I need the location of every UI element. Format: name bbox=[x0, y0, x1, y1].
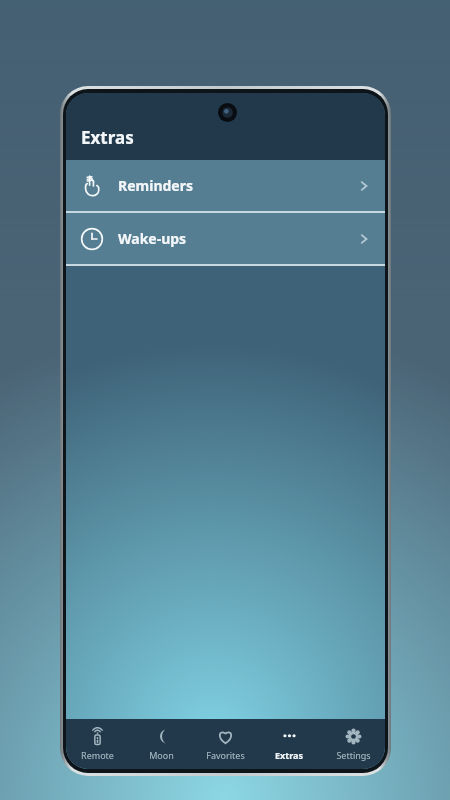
staticText: Reminders bbox=[118, 176, 193, 195]
staticText: Wake-ups bbox=[118, 229, 187, 248]
button[interactable]: Reminders bbox=[66, 160, 385, 211]
button[interactable]: Favorites bbox=[193, 719, 257, 769]
button[interactable]: Wake-ups bbox=[66, 213, 385, 264]
staticText: Extras bbox=[275, 749, 303, 761]
staticText: Moon bbox=[149, 749, 174, 761]
staticText: Remote bbox=[81, 749, 114, 761]
staticText: Extras bbox=[81, 126, 134, 149]
staticText: Settings bbox=[336, 749, 371, 761]
button[interactable]: Remote bbox=[66, 719, 129, 769]
staticText: Favorites bbox=[206, 749, 245, 761]
button[interactable]: Moon bbox=[129, 719, 193, 769]
button[interactable]: Extras bbox=[257, 719, 321, 769]
button[interactable]: Settings bbox=[321, 719, 385, 769]
